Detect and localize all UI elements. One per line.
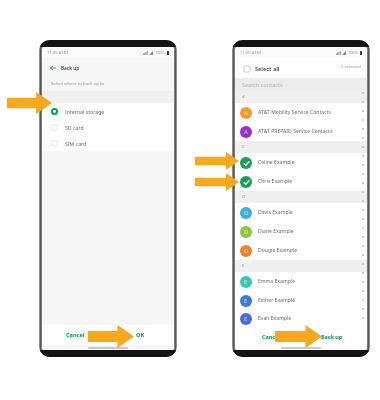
staticText: 11:05 AT&T [240, 50, 262, 56]
staticText: Cancel [262, 333, 280, 340]
staticText: AT&T Mobility Service Contacts [258, 109, 331, 116]
staticText: 100% [155, 50, 165, 55]
staticText: 2 selected [341, 64, 361, 70]
staticText: Dougie Example [258, 247, 298, 254]
button[interactable]: Search contacts [235, 78, 367, 91]
staticText: D [242, 194, 246, 200]
button[interactable]: Back up [315, 330, 367, 343]
staticText: E [244, 278, 248, 286]
button[interactable]: Internal storage [42, 103, 174, 119]
button[interactable]: SD card [42, 119, 174, 135]
button[interactable]: D [235, 203, 367, 222]
staticText: D [244, 228, 249, 236]
staticText: A [244, 109, 248, 117]
staticText: OK [136, 331, 145, 339]
staticText: Cancel [66, 331, 85, 339]
staticText: SIM card [65, 140, 87, 147]
staticText: E [244, 297, 248, 305]
staticText: Chris Example [258, 178, 293, 185]
button[interactable]: Cancel [235, 330, 286, 343]
staticText: Select where to back up to [51, 80, 105, 86]
staticText: Evan Example [258, 315, 292, 322]
button[interactable]: E [235, 310, 367, 327]
staticText: Emma Example [258, 278, 296, 285]
staticText: A [244, 128, 248, 136]
staticText: # [242, 94, 245, 100]
button[interactable]: OK [130, 327, 174, 343]
staticText: Search contacts [242, 81, 283, 88]
staticText: Davis Example [258, 209, 293, 216]
button[interactable]: Chris Example [235, 172, 367, 191]
button[interactable]: Select all [241, 63, 252, 74]
staticText: SD card [65, 124, 84, 131]
staticText: Internal storage [65, 108, 105, 115]
staticText: C [242, 144, 245, 150]
button[interactable]: D [235, 241, 367, 260]
staticText: D [244, 209, 249, 217]
button[interactable]: E [235, 291, 367, 310]
staticText: 11:05 AT&T [47, 50, 69, 56]
button[interactable]: A [235, 122, 367, 141]
button[interactable]: A [235, 103, 367, 122]
button[interactable]: Celine Example [235, 153, 367, 172]
staticText: Esther Example [258, 297, 296, 304]
staticText: Celine Example [258, 159, 295, 166]
staticText: Diane Example [258, 228, 294, 235]
button[interactable]: SIM card [42, 135, 174, 151]
button[interactable]: Cancel [42, 327, 91, 343]
staticText: 100% [348, 50, 358, 55]
staticText: E [244, 315, 248, 323]
staticText: Back up [61, 65, 80, 71]
staticText: E [242, 263, 245, 269]
button[interactable]: Back [48, 63, 58, 73]
staticText: Select all [255, 65, 280, 72]
button[interactable]: E [235, 272, 367, 291]
staticText: D [244, 247, 249, 255]
staticText: Back up [321, 333, 343, 340]
staticText: AT&T PREPAID Service Contacts [258, 128, 333, 135]
button[interactable]: D [235, 222, 367, 241]
